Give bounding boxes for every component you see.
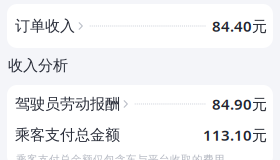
staticText: 113.10元 xyxy=(203,125,267,145)
staticText: 订单收入 xyxy=(15,16,75,35)
button[interactable]: 订单收入 xyxy=(7,4,273,48)
staticText: 驾驶员劳动报酬 xyxy=(15,94,120,113)
staticText: 收入分析 xyxy=(8,56,68,75)
staticText: 84.40元 xyxy=(212,16,267,36)
button[interactable]: 乘客支付总金额 xyxy=(7,120,273,150)
staticText: 84.90元 xyxy=(212,94,267,114)
button[interactable]: 驾驶员劳动报酬 xyxy=(7,88,273,120)
staticText: 乘客支付总金额仅包含车与平台收取的费用 xyxy=(16,153,225,160)
staticText: 乘客支付总金额 xyxy=(15,125,120,144)
